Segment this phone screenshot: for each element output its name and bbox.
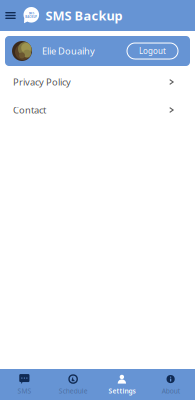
button[interactable]: About [146,369,195,400]
staticText: Privacy Policy [13,76,71,88]
staticText: Contact [13,104,46,116]
staticText: Logout [139,46,166,56]
button[interactable]: SMS [0,369,49,400]
staticText: Elie Douaihy [42,45,95,57]
staticText: Settings [108,387,135,395]
button[interactable]: Schedule [49,369,98,400]
button[interactable]: Privacy Policy [0,68,195,96]
button[interactable]: Contact [0,96,195,124]
button[interactable]: Menu [0,0,21,31]
button[interactable]: Settings [97,369,146,400]
staticText: SMS [29,11,34,15]
staticText: SMS Backup [46,7,123,24]
button[interactable]: Logout [127,43,178,59]
staticText: BACKUP [25,15,37,19]
staticText: About [162,387,180,395]
staticText: SMS [17,387,31,395]
staticText: Schedule [59,387,88,395]
